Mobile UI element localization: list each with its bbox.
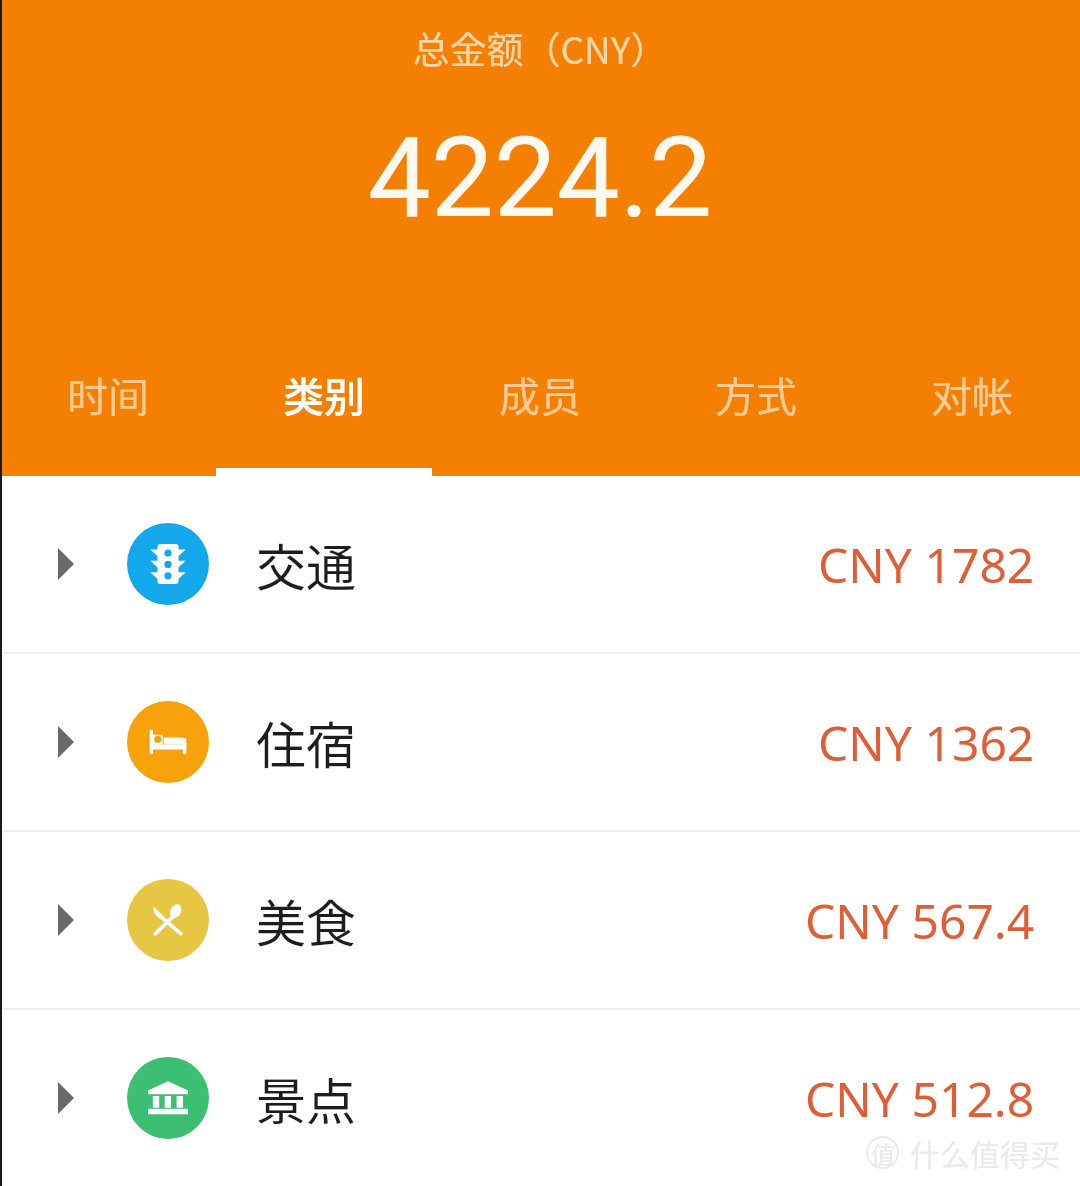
staticText: 对帐 xyxy=(931,364,1013,423)
staticText: 交通 xyxy=(256,528,356,600)
button[interactable]: 类别 xyxy=(216,310,432,476)
staticText: CNY 567.4 xyxy=(805,888,1035,953)
other: Expand 美食 xyxy=(58,904,74,936)
button[interactable]: Expand 景点 xyxy=(0,1010,1080,1186)
staticText: 类别 xyxy=(283,364,365,423)
button[interactable]: Expand 住宿 xyxy=(0,654,1080,830)
staticText: CNY 512.8 xyxy=(805,1066,1035,1131)
button[interactable]: 方式 xyxy=(648,310,864,476)
staticText: 成员 xyxy=(499,364,581,423)
other: Expand 景点 xyxy=(58,1082,74,1114)
staticText: 方式 xyxy=(715,364,797,423)
staticText: 景点 xyxy=(256,1062,356,1134)
staticText: 值 xyxy=(871,1136,895,1169)
staticText: 美食 xyxy=(256,884,356,956)
staticText: 住宿 xyxy=(256,706,356,778)
staticText: 什么值得买 xyxy=(910,1131,1060,1174)
staticText: CNY 1782 xyxy=(818,532,1035,597)
button[interactable]: Expand 美食 xyxy=(0,832,1080,1008)
staticText: 4224.2 xyxy=(0,112,1080,243)
staticText: CNY 1362 xyxy=(818,710,1035,775)
other: Expand 住宿 xyxy=(58,726,74,758)
staticText: 总金额（CNY） xyxy=(0,21,1080,75)
staticText: 时间 xyxy=(67,364,149,423)
button[interactable]: 成员 xyxy=(432,310,648,476)
button[interactable]: 对帐 xyxy=(864,310,1080,476)
button[interactable]: Expand 交通 xyxy=(0,476,1080,652)
button[interactable]: 时间 xyxy=(0,310,216,476)
other: Expand 交通 xyxy=(58,548,74,580)
